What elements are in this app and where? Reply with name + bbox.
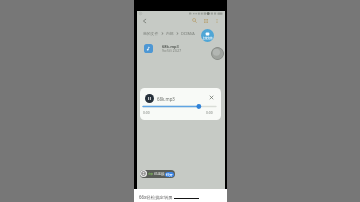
staticText: 小米 (148, 172, 154, 175)
button[interactable]: Search (189, 15, 200, 26)
button[interactable]: 68k.mp3 (137, 42, 225, 56)
button[interactable]: DCIM/A (181, 31, 195, 36)
staticText: 打开 (166, 173, 173, 177)
button[interactable]: Upload file (201, 29, 214, 42)
staticText: 68k.mp3 (162, 44, 179, 49)
button[interactable]: 打开 (165, 172, 174, 177)
staticText: 已连接 (154, 172, 165, 176)
button[interactable]: Back (139, 15, 150, 26)
staticText: 66x轻松搞定转屏 (139, 194, 173, 200)
button[interactable]: 内部 (166, 31, 174, 36)
button[interactable]: 小米 (140, 170, 175, 178)
button[interactable]: Floating assistant (211, 47, 224, 60)
staticText: 9月5日 23:27 (162, 49, 181, 53)
button[interactable]: Pause (145, 94, 154, 103)
staticText: 68k.mp3 (157, 96, 175, 102)
button[interactable]: More options (211, 15, 222, 26)
button[interactable]: Close player (207, 93, 216, 102)
button[interactable]: Change view (200, 15, 211, 26)
staticText: 0:00 (206, 110, 213, 115)
button[interactable]: 我的文件 (143, 31, 159, 36)
staticText: 0:00 (143, 110, 150, 115)
staticText: 上传文件 (202, 36, 213, 39)
